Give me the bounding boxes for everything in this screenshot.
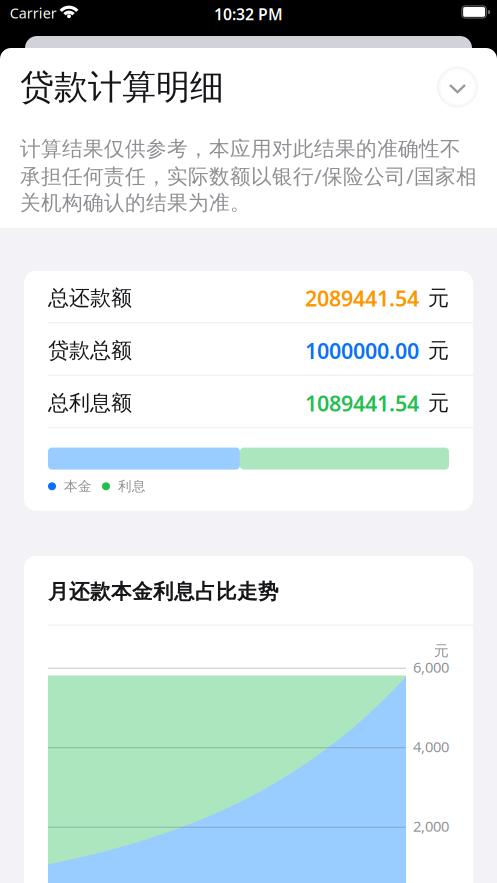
- staticText: 元: [428, 285, 449, 311]
- staticText: 1089441.54: [305, 388, 419, 418]
- staticText: 元: [434, 642, 449, 660]
- staticText: 计算结果仅供参考，本应用对此结果的准确性不承担任何责任，实际数额以银行/保险公司…: [20, 136, 477, 216]
- staticText: 贷款计算明细: [20, 66, 224, 108]
- button[interactable]: Collapse: [437, 67, 478, 108]
- staticText: Carrier: [10, 3, 57, 23]
- staticText: 利息: [118, 478, 146, 495]
- staticText: 本金: [64, 478, 92, 495]
- staticText: 总还款额: [48, 285, 132, 311]
- staticText: 2,000: [413, 816, 449, 836]
- staticText: 贷款总额: [48, 337, 132, 364]
- staticText: 6,000: [413, 657, 449, 677]
- staticText: 元: [428, 390, 449, 416]
- staticText: 4,000: [413, 737, 449, 757]
- staticText: 10:32 PM: [214, 3, 283, 25]
- staticText: 2089441.54: [305, 283, 419, 313]
- button[interactable]: 总利息额: [48, 376, 449, 427]
- staticText: 月还款本金利息占比走势: [48, 579, 279, 605]
- staticText: 元: [428, 337, 449, 364]
- staticText: 1000000.00: [305, 336, 419, 365]
- staticText: 总利息额: [48, 390, 132, 416]
- button[interactable]: 总还款额: [48, 271, 449, 322]
- button[interactable]: 贷款总额: [48, 323, 449, 375]
